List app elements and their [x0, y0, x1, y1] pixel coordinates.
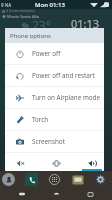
- button[interactable]: Settings: [94, 173, 107, 186]
- button[interactable]: Screenshot: [5, 131, 104, 152]
- staticText: Mon 01:13: [35, 1, 65, 9]
- button[interactable]: Sound on: [80, 153, 104, 171]
- staticText: Power off: [32, 49, 61, 58]
- staticText: Monte Santa Alta: [7, 14, 40, 19]
- staticText: Power off and restart: [32, 71, 95, 80]
- button[interactable]: Phone: [25, 173, 38, 186]
- button[interactable]: Silent: [8, 153, 32, 171]
- button[interactable]: Turn on Airplane mode: [5, 87, 104, 108]
- staticText: A Coruna workspace: [6, 9, 35, 13]
- button[interactable]: Vibrate: [44, 153, 68, 171]
- button[interactable]: Messages: [71, 173, 84, 186]
- staticText: Torch: [32, 115, 49, 124]
- button[interactable]: All apps: [48, 173, 61, 186]
- button[interactable]: Torch: [5, 109, 104, 130]
- staticText: Screenshot: [32, 137, 65, 146]
- button[interactable]: Recents: [78, 188, 102, 200]
- button[interactable]: Home: [44, 188, 68, 200]
- staticText: 23°: [32, 17, 51, 33]
- button[interactable]: Power off: [5, 43, 104, 64]
- staticText: 01:13: [71, 16, 100, 31]
- staticText: Turn on Airplane mode: [32, 93, 101, 102]
- button[interactable]: Power off and restart: [5, 65, 104, 86]
- button[interactable]: Contacts: [2, 173, 15, 186]
- button[interactable]: Back: [10, 188, 34, 200]
- staticText: Phone options: [10, 32, 51, 40]
- staticText: 9 NA: [1, 2, 12, 8]
